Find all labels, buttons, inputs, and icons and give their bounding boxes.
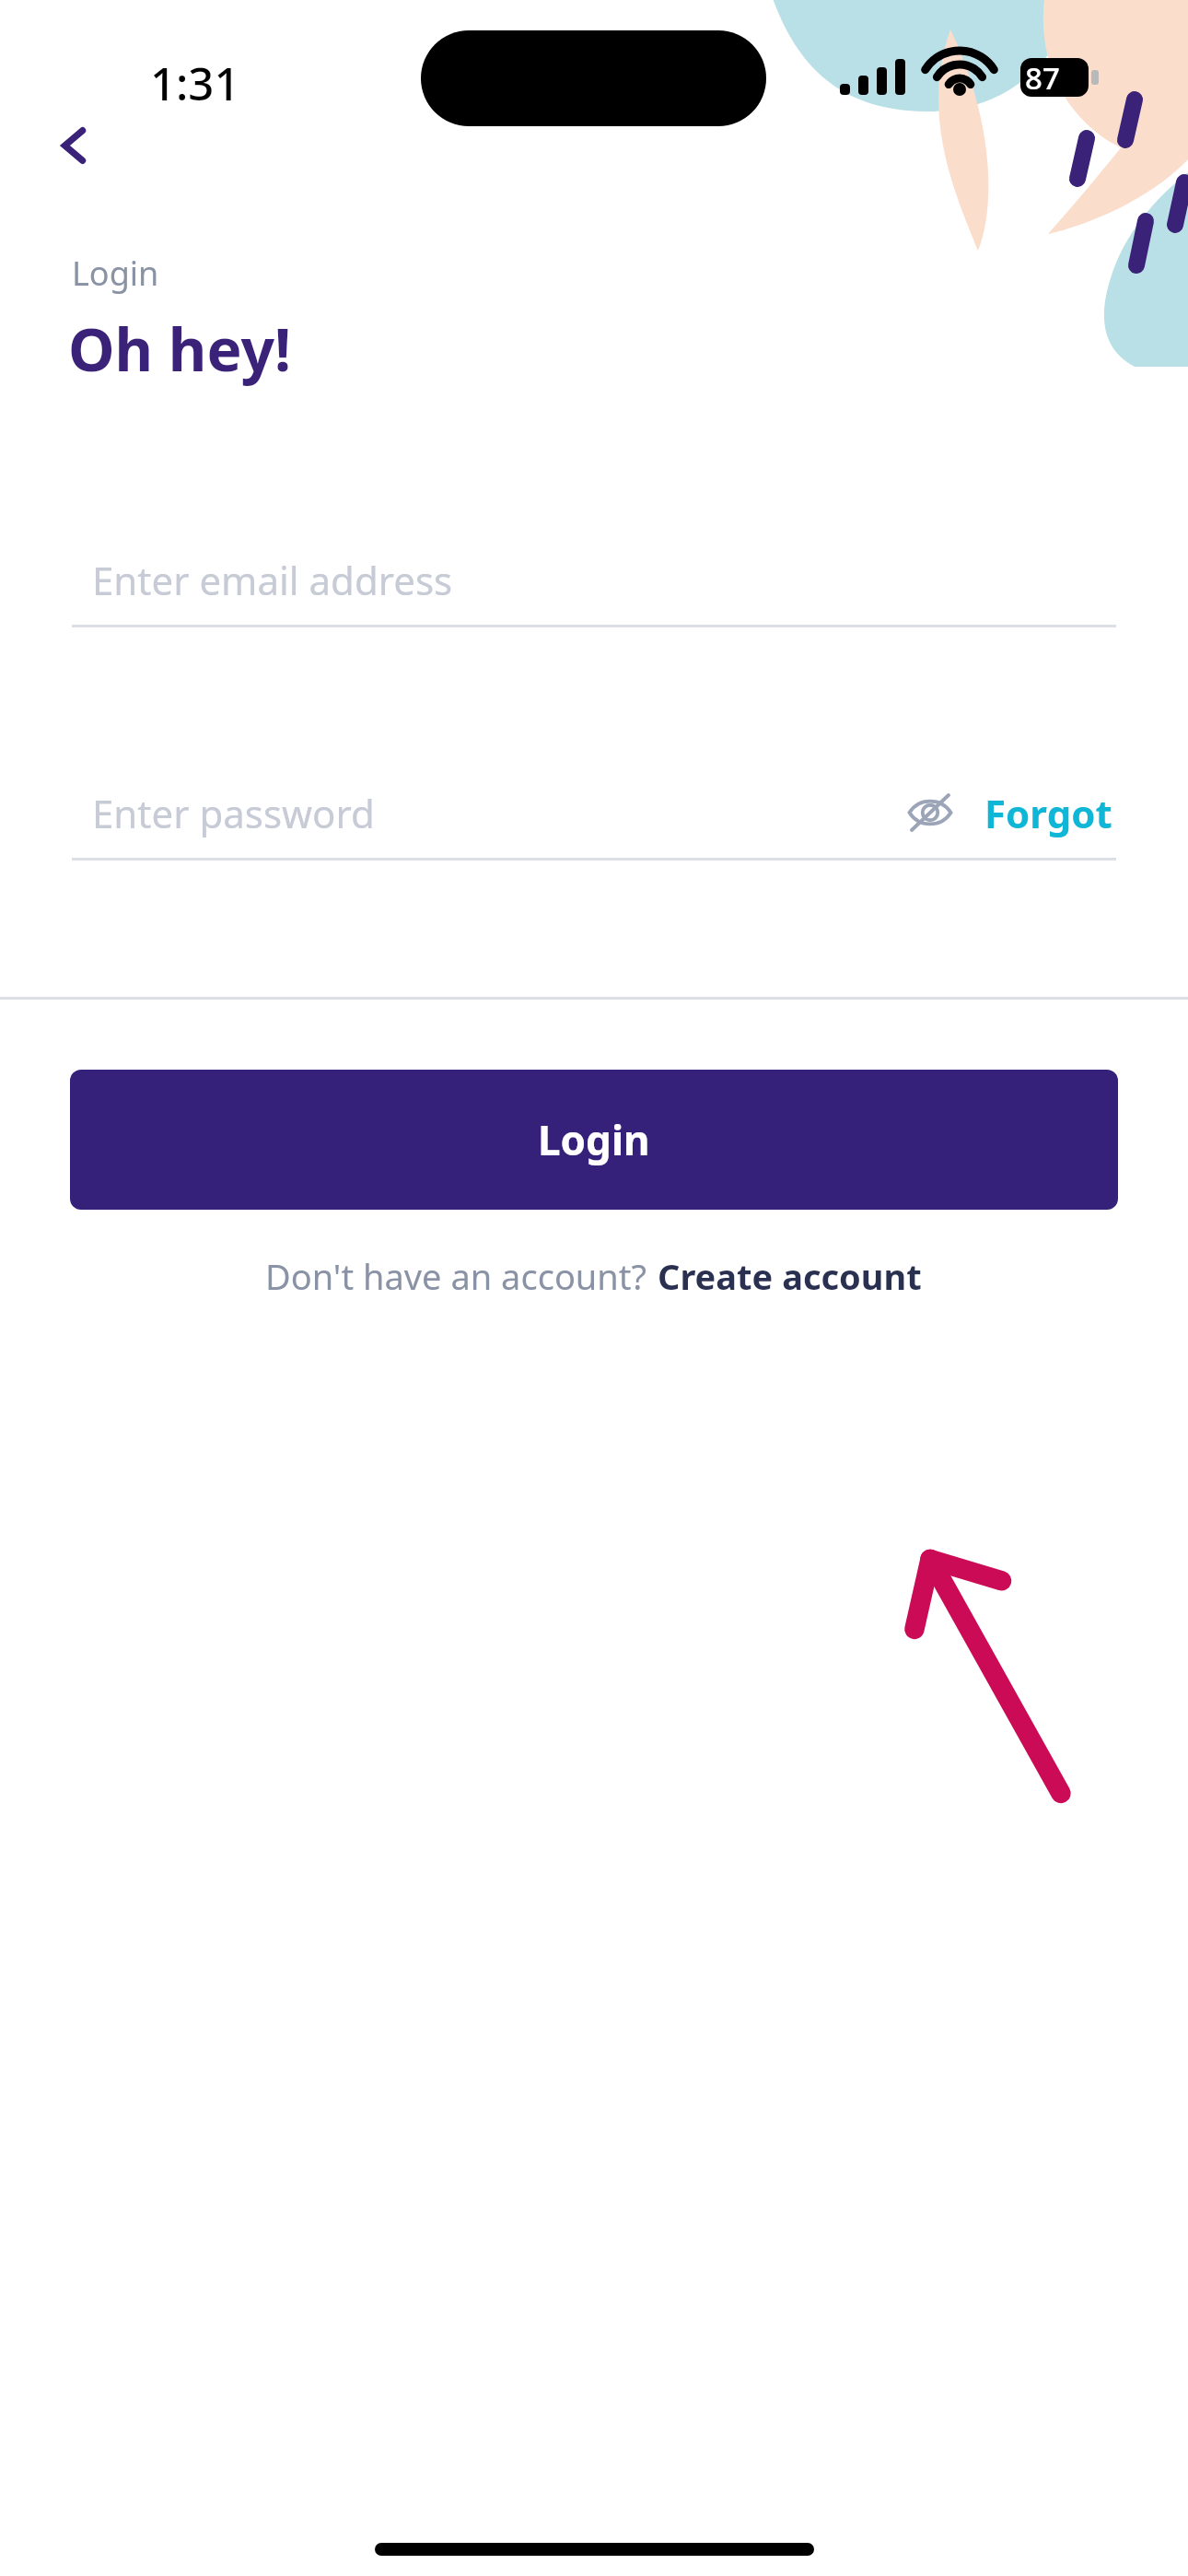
- button[interactable]: Enter email address: [72, 534, 1116, 627]
- button[interactable]: Create account: [656, 1245, 924, 1307]
- staticText: Enter email address: [92, 554, 453, 606]
- staticText: Enter password: [92, 787, 375, 839]
- staticText: Create account: [658, 1252, 922, 1300]
- button[interactable]: Show password: [894, 777, 966, 849]
- staticText: 1:31: [150, 53, 240, 114]
- staticText: Don't have an account?: [265, 1252, 656, 1300]
- button[interactable]: Forgot: [981, 778, 1116, 849]
- button[interactable]: Enter password: [72, 767, 894, 858]
- staticText: Forgot: [984, 787, 1112, 839]
- staticText: Oh hey!: [68, 309, 291, 389]
- staticText: Login: [72, 251, 159, 296]
- button[interactable]: Login: [70, 1070, 1118, 1210]
- staticText: 87: [1025, 57, 1060, 99]
- staticText: Login: [538, 1112, 650, 1167]
- button[interactable]: Back: [29, 101, 118, 190]
